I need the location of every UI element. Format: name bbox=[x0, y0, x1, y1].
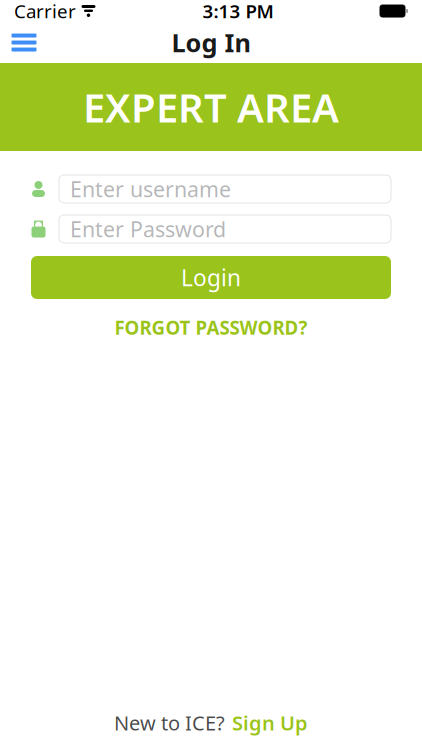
staticText: Sign Up bbox=[232, 709, 308, 736]
button[interactable]: Login bbox=[31, 256, 391, 299]
staticText: Enter username bbox=[70, 175, 231, 203]
staticText: EXPERT AREA bbox=[83, 80, 339, 133]
staticText: New to ICE? bbox=[114, 709, 225, 736]
button[interactable]: Sign Up bbox=[232, 709, 308, 736]
staticText: FORGOT PASSWORD? bbox=[114, 315, 307, 340]
button[interactable]: FORGOT PASSWORD? bbox=[104, 309, 317, 346]
staticText: Carrier bbox=[14, 0, 76, 23]
button[interactable]: Menu bbox=[2, 22, 46, 63]
staticText: 3:13 PM bbox=[202, 0, 273, 23]
staticText: Log In bbox=[171, 26, 250, 59]
staticText: Login bbox=[181, 262, 241, 292]
staticText: Enter Password bbox=[70, 215, 226, 243]
